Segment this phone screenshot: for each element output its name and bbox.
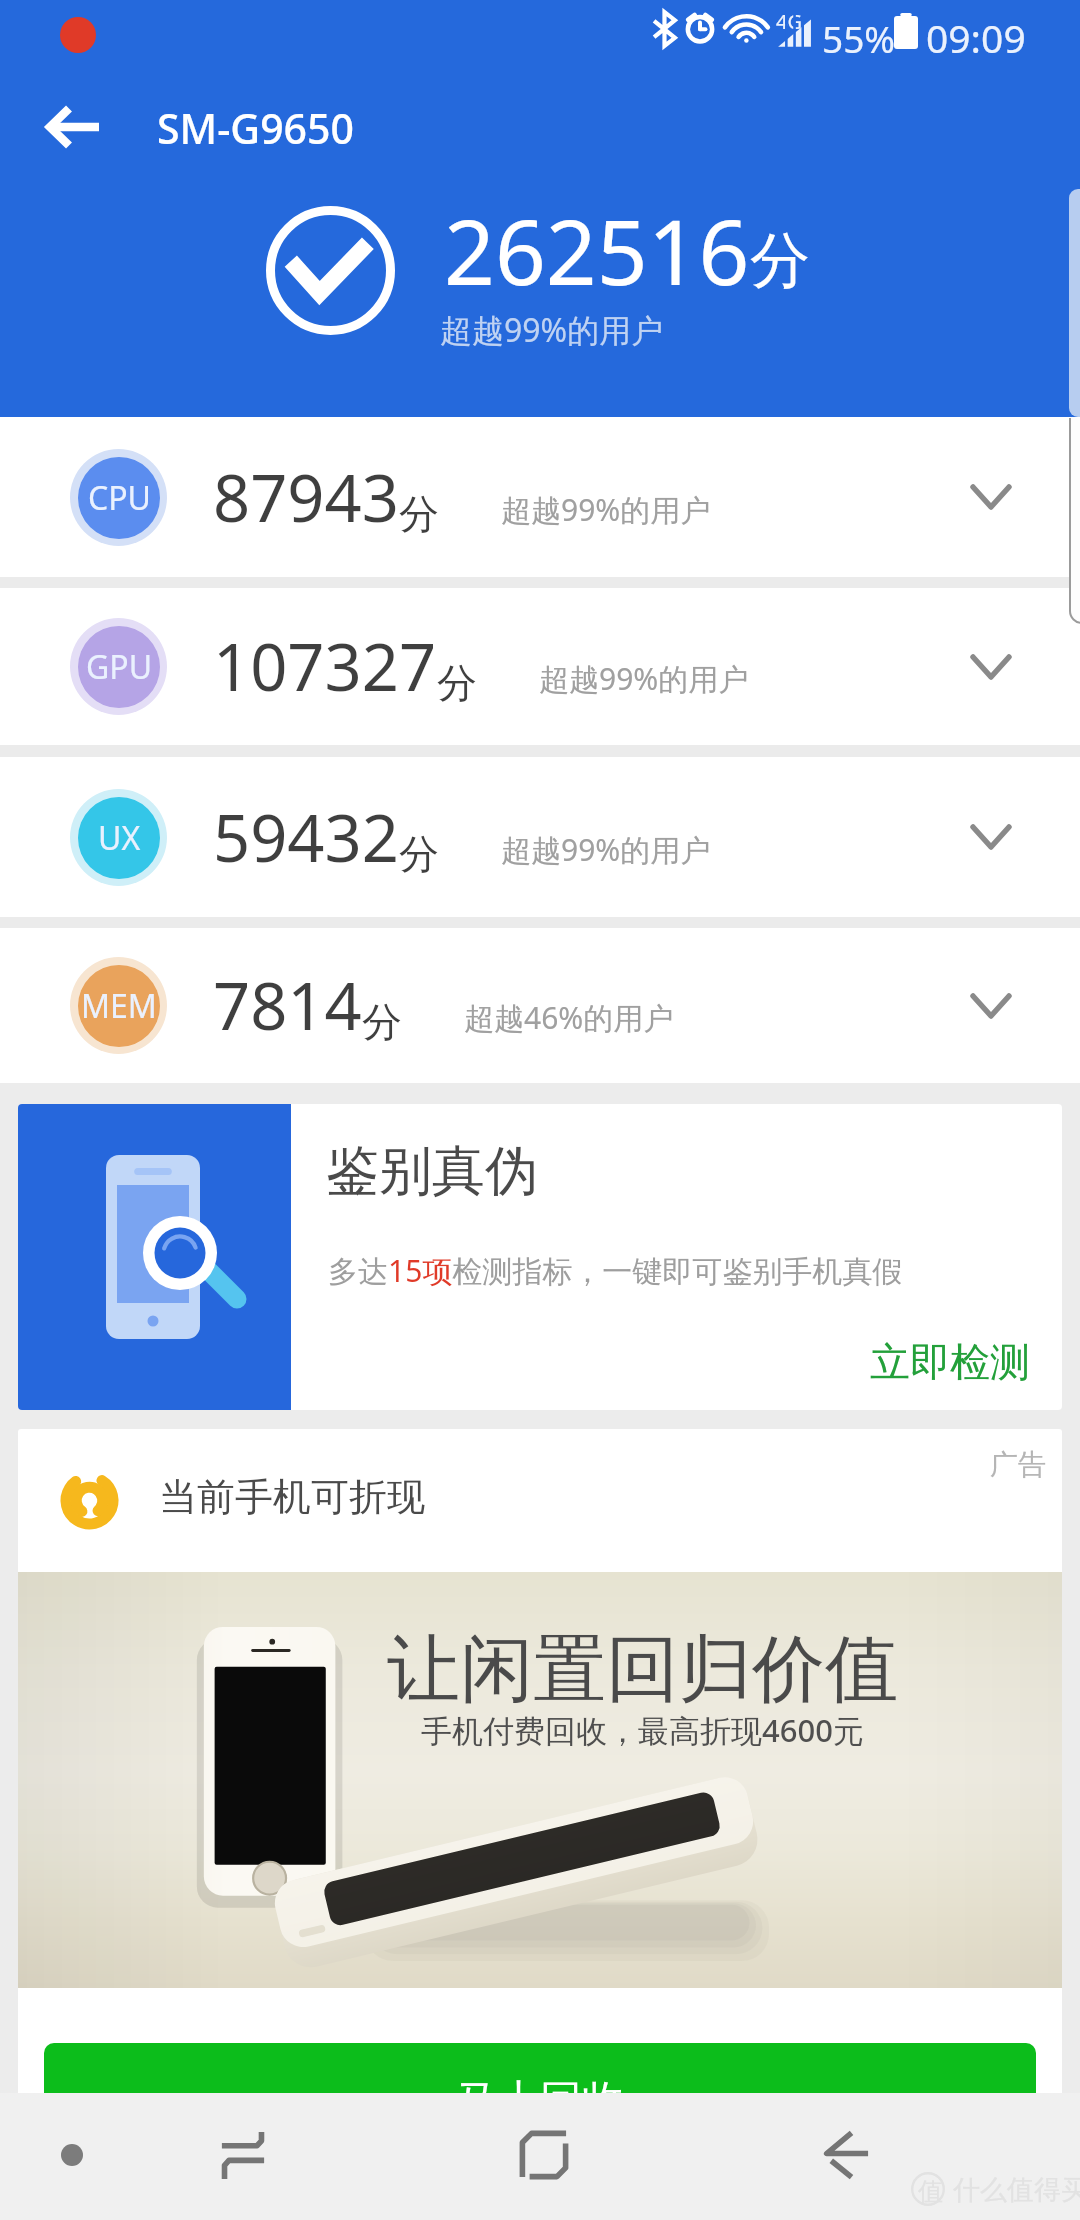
button[interactable]: Back (801, 2110, 891, 2200)
staticText: 鉴别真伪 (326, 1138, 538, 1205)
button[interactable]: MEM (0, 928, 1080, 1083)
staticText: 09:09 (926, 11, 1026, 64)
staticText: 当前手机可折现 (159, 1473, 425, 1521)
staticText: 马上回收 (456, 2075, 624, 2128)
staticText: 262516 (444, 190, 750, 311)
staticText: 分 (399, 489, 439, 539)
staticText: 59432 (213, 793, 399, 882)
staticText: 分 (750, 223, 810, 299)
button[interactable]: Recents (198, 2110, 288, 2200)
staticText: 55% (822, 13, 896, 63)
staticText: 什么值得买 (953, 2173, 1080, 2207)
staticText: 立即检测 (870, 1337, 1030, 1387)
staticText: SM-G9650 (157, 100, 354, 156)
staticText: UX (98, 816, 141, 860)
staticText: MEM (81, 984, 157, 1028)
staticText: 超越99%的用户 (440, 308, 664, 352)
staticText: 多达15项检测指标，一键即可鉴别手机真假 (328, 1250, 903, 1291)
staticText: GPU (86, 645, 153, 689)
staticText: 超越99%的用户 (501, 829, 711, 870)
button[interactable]: GPU (0, 588, 1080, 745)
button[interactable]: Back (24, 77, 124, 177)
button[interactable]: CPU (0, 417, 1080, 577)
staticText: 超越99%的用户 (539, 658, 749, 699)
staticText: 87943 (213, 453, 399, 542)
button[interactable]: UX (0, 757, 1080, 917)
staticText: 手机付费回收，最高折现4600元 (421, 1709, 864, 1751)
staticText: 分 (399, 829, 439, 879)
button[interactable]: 当前手机可折现 (18, 1429, 1062, 2189)
button[interactable]: 马上回收 (44, 2043, 1036, 2159)
staticText: 让闲置回归价值 (387, 1624, 898, 1716)
staticText: 分 (362, 997, 402, 1047)
staticText: 分 (437, 658, 477, 708)
button[interactable]: Show buttons (32, 2115, 112, 2195)
staticText: 超越46%的用户 (464, 997, 674, 1038)
staticText: 107327 (213, 622, 437, 711)
staticText: 广告 (990, 1447, 1046, 1482)
button[interactable]: 立即检测 (870, 1337, 1030, 1387)
staticText: 超越99%的用户 (501, 489, 711, 530)
staticText: 7814 (213, 961, 362, 1050)
staticText: CPU (88, 476, 151, 520)
button[interactable]: 鉴别真伪 (18, 1104, 1062, 1410)
staticText: 值 (918, 2176, 943, 2207)
button[interactable]: Home (499, 2110, 589, 2200)
staticText: 4G (776, 8, 802, 35)
